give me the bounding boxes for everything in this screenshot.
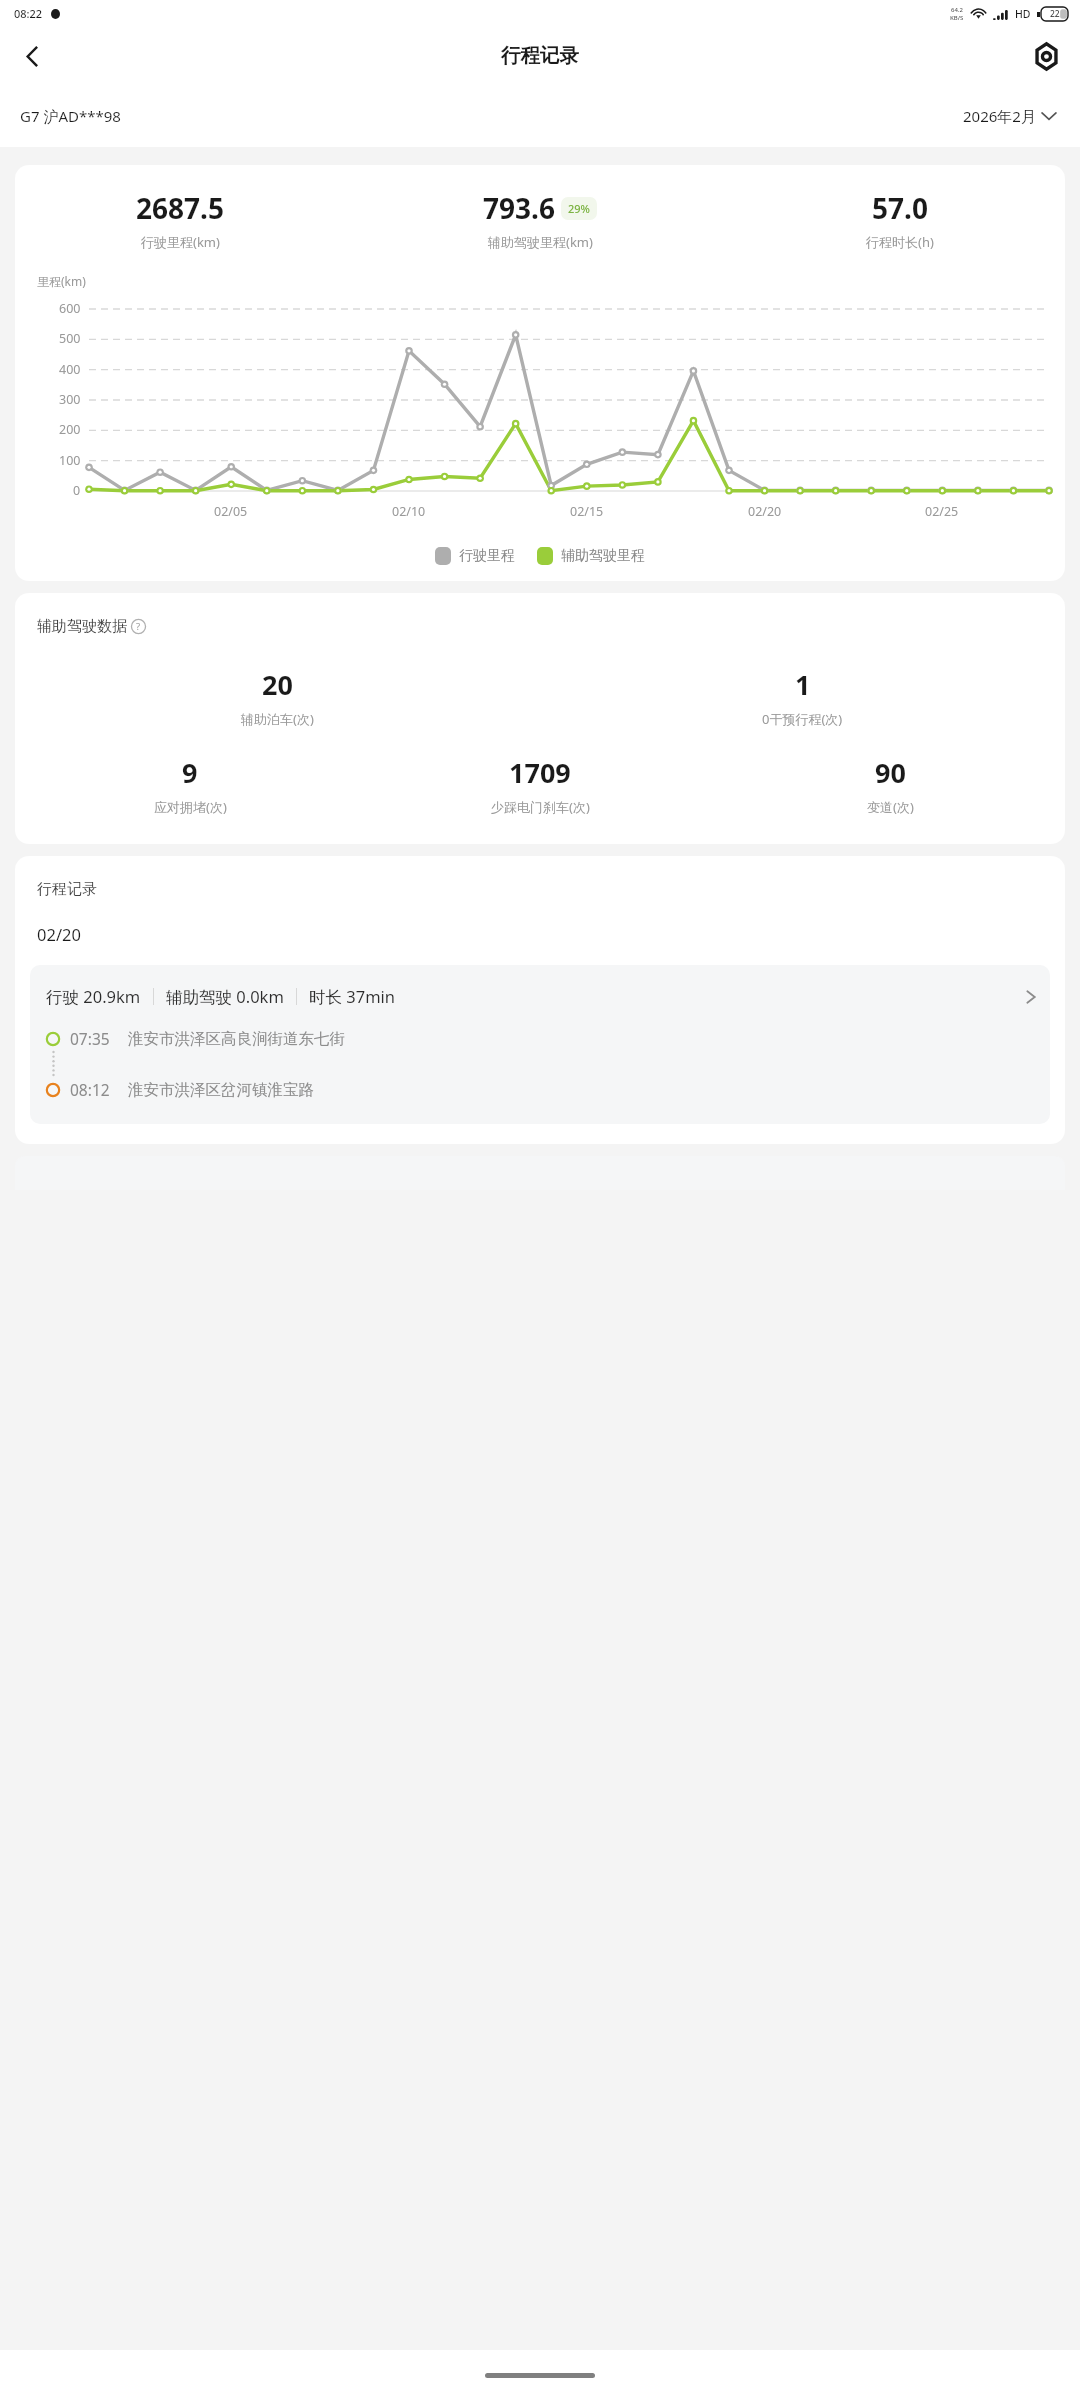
staticText: KB/S: [950, 14, 964, 22]
staticText: 300: [59, 391, 81, 408]
staticText: 0: [73, 482, 81, 499]
staticText: 100: [59, 452, 81, 469]
staticText: 02/05: [214, 503, 248, 520]
staticText: 行驶 20.9km: [46, 985, 141, 1008]
staticText: 行驶里程: [459, 547, 515, 565]
staticText: 辅助驾驶数据: [37, 617, 127, 636]
staticText: 400: [59, 361, 81, 378]
button[interactable]: Back: [8, 32, 56, 80]
staticText: 02/10: [392, 503, 426, 520]
staticText: 9: [182, 754, 198, 791]
staticText: 600: [59, 300, 81, 317]
staticText: 29%: [568, 201, 590, 216]
staticText: 行驶里程(km): [141, 233, 220, 251]
staticText: 08:22: [14, 6, 43, 21]
staticText: 1: [795, 666, 811, 703]
staticText: 里程(km): [37, 273, 86, 289]
staticText: 90: [875, 754, 906, 791]
staticText: 2687.5: [136, 189, 224, 227]
button[interactable]: 2026年2月: [959, 102, 1060, 130]
staticText: 0干预行程(次): [762, 710, 843, 728]
staticText: 20: [262, 666, 293, 703]
staticText: 行程记录: [501, 43, 579, 68]
staticText: ?: [136, 620, 141, 633]
staticText: 应对拥堵(次): [154, 798, 227, 816]
staticText: 2026年2月: [963, 106, 1036, 126]
staticText: 行程时长(h): [866, 233, 934, 251]
staticText: 淮安市洪泽区高良涧街道东七街: [128, 1029, 345, 1049]
staticText: G7 沪AD***98: [20, 106, 121, 126]
staticText: 辅助驾驶 0.0km: [166, 985, 284, 1008]
staticText: 22: [1050, 8, 1060, 20]
staticText: 变道(次): [867, 798, 914, 816]
staticText: 08:12: [70, 1079, 110, 1100]
staticText: 57.0: [872, 189, 928, 227]
staticText: 02/25: [925, 503, 959, 520]
staticText: 1709: [509, 754, 571, 791]
staticText: 500: [59, 330, 81, 347]
staticText: 淮安市洪泽区岔河镇淮宝路: [128, 1080, 314, 1100]
staticText: 少踩电门刹车(次): [491, 798, 590, 816]
staticText: 02/20: [37, 923, 81, 945]
staticText: HD: [1015, 7, 1031, 21]
staticText: 时长 37min: [309, 985, 396, 1008]
staticText: 辅助泊车(次): [241, 710, 314, 728]
staticText: 辅助驾驶里程: [561, 547, 645, 565]
staticText: 793.6: [483, 189, 555, 227]
button[interactable]: 行驶 20.9km: [30, 965, 1050, 1124]
button[interactable]: Settings: [1022, 32, 1070, 80]
staticText: 02/15: [570, 503, 604, 520]
staticText: 64.2: [951, 6, 963, 14]
staticText: 02/20: [748, 503, 782, 520]
staticText: 辅助驾驶里程(km): [488, 233, 593, 251]
staticText: 行程记录: [37, 880, 97, 899]
staticText: 07:35: [70, 1028, 110, 1049]
staticText: 200: [59, 421, 81, 438]
